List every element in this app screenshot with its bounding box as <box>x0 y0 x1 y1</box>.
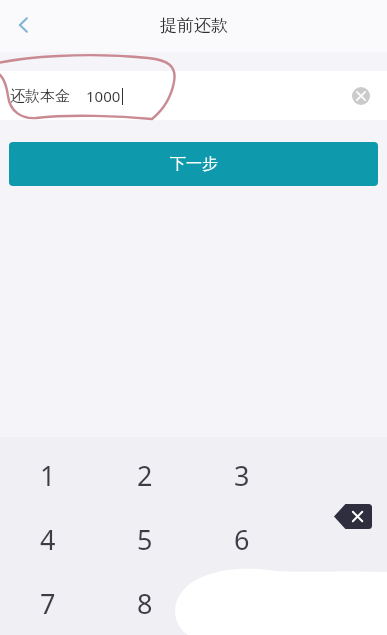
staticText: 4 <box>40 521 56 558</box>
staticText: 7 <box>40 585 56 622</box>
staticText: 3 <box>234 457 250 494</box>
staticText: 1 <box>40 457 56 494</box>
button[interactable]: 2 <box>96 443 193 507</box>
button[interactable]: Back <box>0 1 48 49</box>
button[interactable]: 7 <box>0 571 96 635</box>
staticText: 5 <box>137 521 153 558</box>
button[interactable]: 5 <box>96 507 193 571</box>
staticText: 1000 <box>86 86 121 106</box>
button[interactable]: 下一步 <box>9 142 378 186</box>
button[interactable]: 4 <box>0 507 96 571</box>
button[interactable]: 3 <box>193 443 290 507</box>
button[interactable]: Clear <box>348 83 374 109</box>
button[interactable]: 1 <box>0 443 96 507</box>
button[interactable]: 还款本金 <box>0 71 387 120</box>
button[interactable]: 6 <box>193 507 290 571</box>
staticText: 6 <box>234 521 250 558</box>
staticText: 下一步 <box>170 154 218 174</box>
staticText: 8 <box>137 585 153 622</box>
staticText: 还款本金 <box>10 87 70 106</box>
button[interactable]: Backspace <box>329 499 377 533</box>
staticText: 提前还款 <box>160 15 228 36</box>
staticText: 2 <box>137 457 153 494</box>
button[interactable]: 8 <box>96 571 193 635</box>
